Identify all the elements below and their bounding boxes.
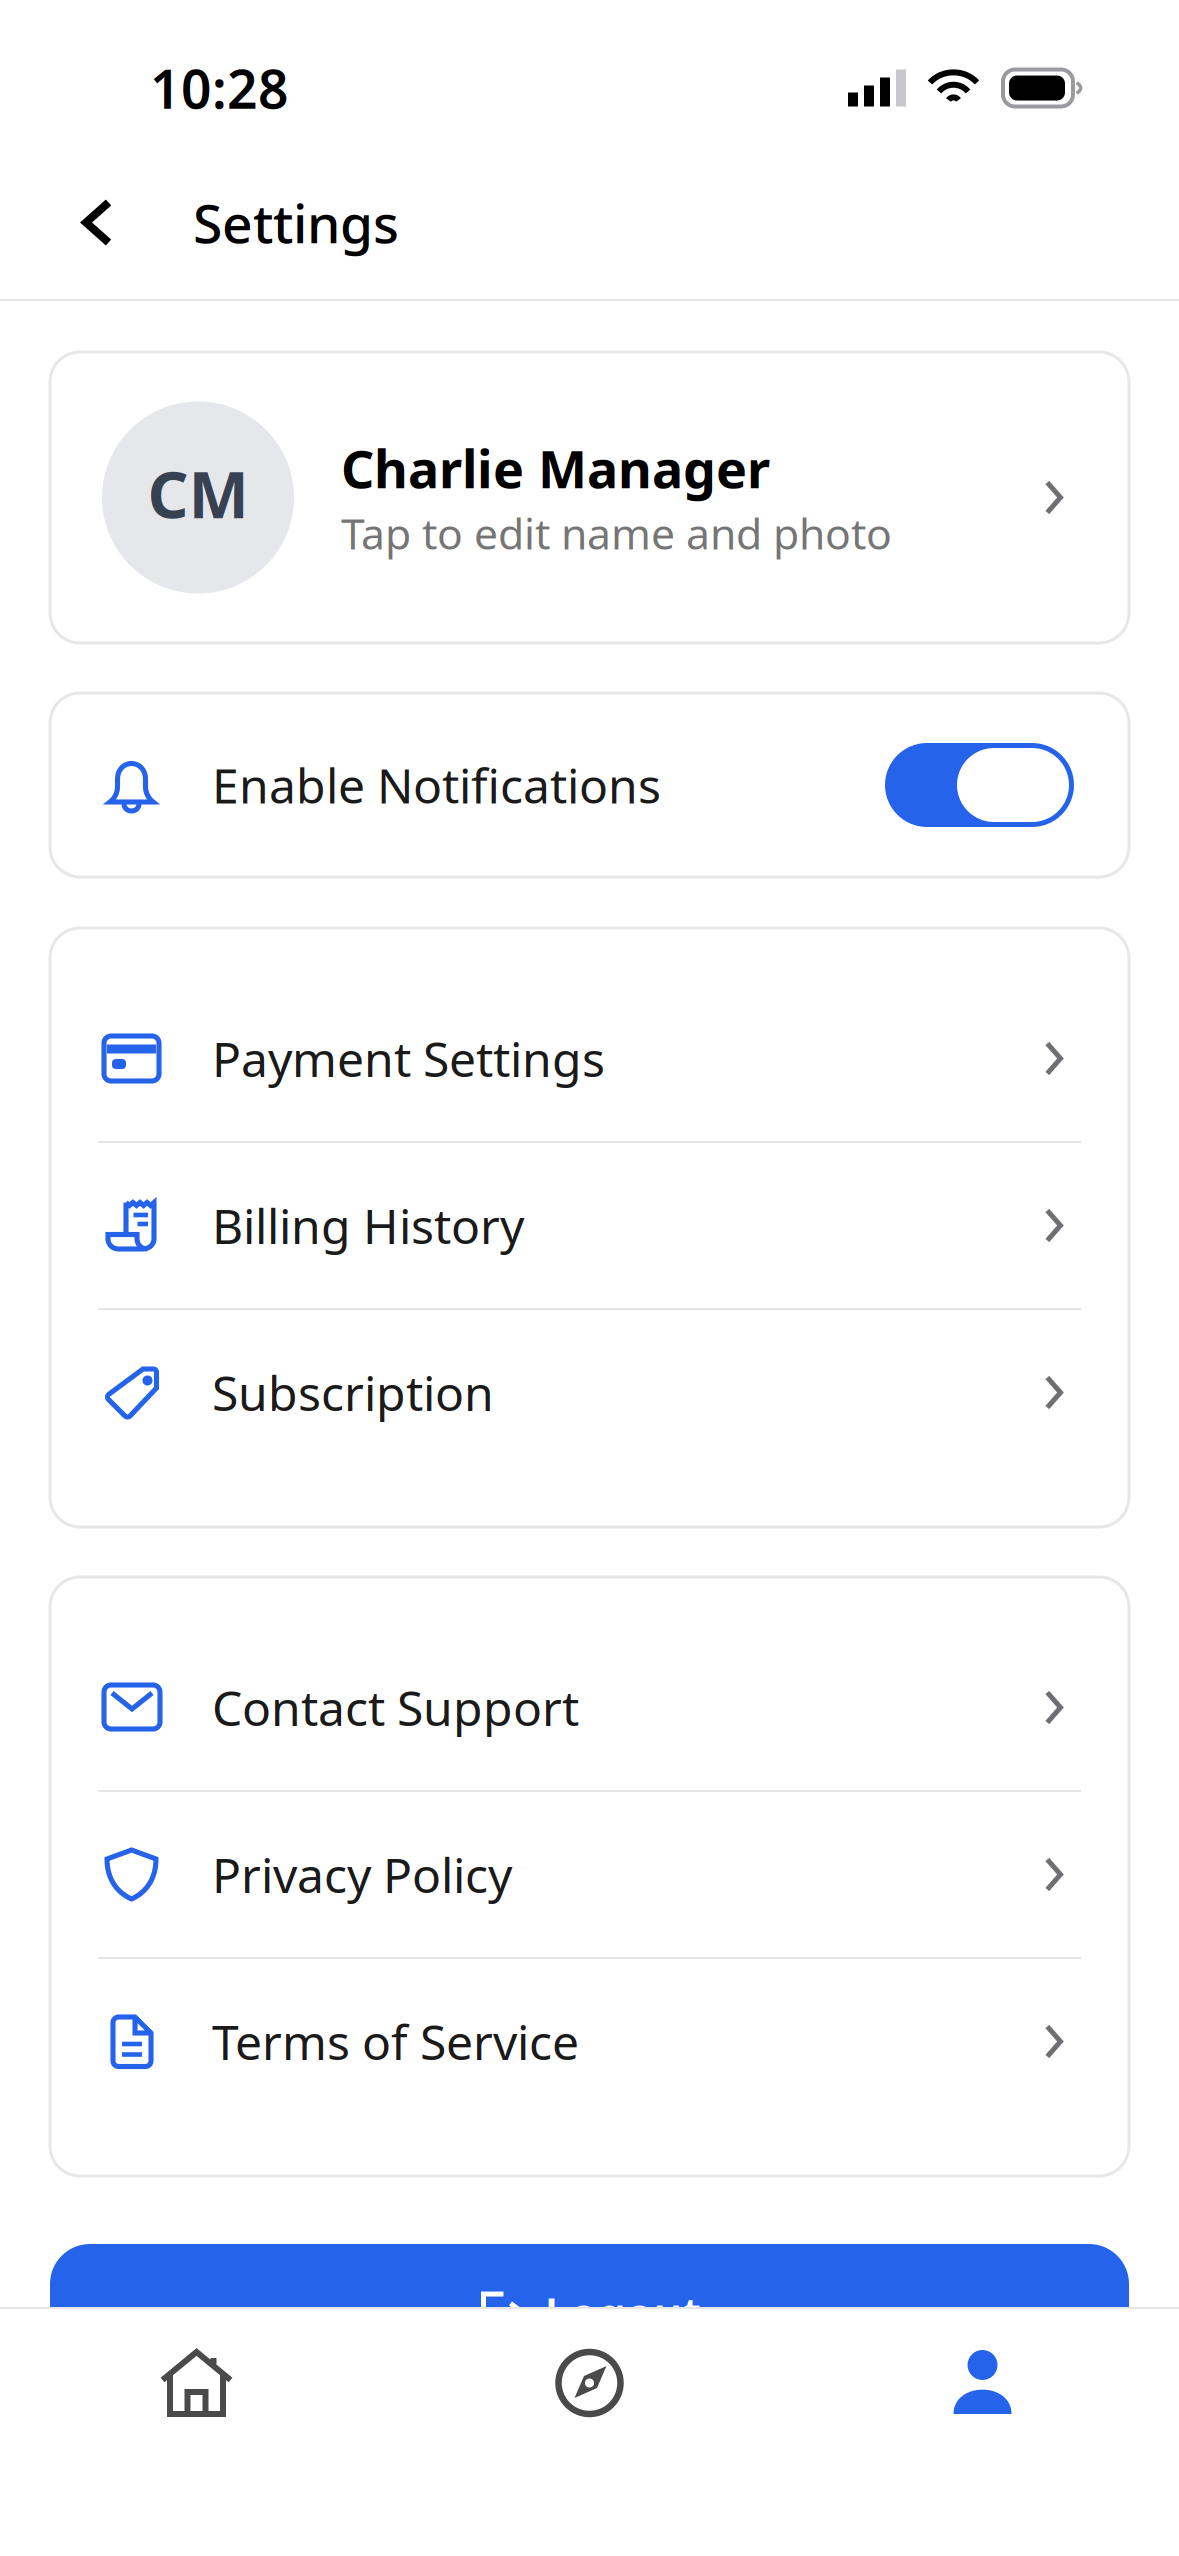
staticText: Privacy Policy xyxy=(212,1843,512,1906)
staticText: Logout xyxy=(544,2283,700,2343)
staticText: Subscription xyxy=(212,1361,494,1424)
staticText: Billing History xyxy=(212,1194,524,1257)
staticText: Terms of Service xyxy=(212,2010,579,2073)
button[interactable]: Payment Settings xyxy=(50,976,1129,1141)
button[interactable]: Billing History xyxy=(50,1143,1129,1308)
staticText: CM xyxy=(147,451,248,536)
button[interactable]: CM xyxy=(50,352,1129,643)
button[interactable]: Back xyxy=(56,172,138,272)
staticText: 10:28 xyxy=(150,53,289,123)
staticText: Tap to edit name and photo xyxy=(341,505,892,561)
button[interactable]: Profile xyxy=(786,2345,1179,2421)
button[interactable]: Terms of Service xyxy=(50,1959,1129,2124)
staticText: Charlie Manager xyxy=(341,434,770,503)
button[interactable]: Enable Notifications xyxy=(885,743,1074,827)
button[interactable]: Subscription xyxy=(50,1310,1129,1475)
button[interactable]: Contact Support xyxy=(50,1625,1129,1790)
staticText: Enable Notifications xyxy=(212,753,661,817)
staticText: Payment Settings xyxy=(212,1027,605,1090)
button[interactable]: Home xyxy=(0,2345,393,2421)
button[interactable]: Privacy Policy xyxy=(50,1792,1129,1957)
staticText: Settings xyxy=(193,187,399,258)
staticText: Contact Support xyxy=(212,1676,579,1739)
button[interactable]: Logout xyxy=(0,2244,1179,2382)
button[interactable]: Explore xyxy=(393,2345,786,2421)
